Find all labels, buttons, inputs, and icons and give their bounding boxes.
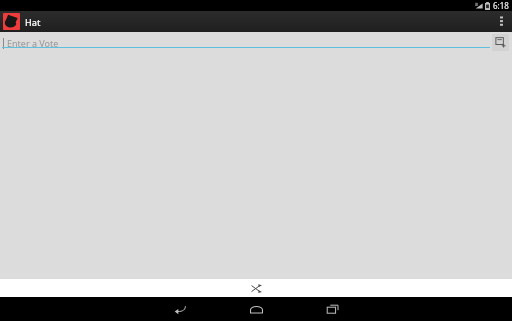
button[interactable]: Home: [229, 297, 283, 321]
staticText: Enter a Vote: [7, 37, 59, 49]
staticText: Hat: [25, 16, 41, 28]
button[interactable]: Add vote: [492, 34, 509, 51]
button[interactable]: Back: [153, 297, 207, 321]
button[interactable]: Shuffle: [241, 279, 271, 297]
button[interactable]: Hat app icon: [3, 13, 20, 30]
staticText: 6:18: [493, 0, 509, 11]
button[interactable]: Recent apps: [305, 297, 359, 321]
button[interactable]: More options: [490, 11, 512, 32]
button[interactable]: Enter a Vote: [0, 32, 492, 53]
